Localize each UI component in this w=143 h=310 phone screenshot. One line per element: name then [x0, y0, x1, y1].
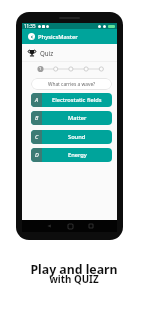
- staticText: Energy: [68, 151, 87, 159]
- staticText: C: [35, 133, 39, 141]
- staticText: A: [35, 96, 39, 104]
- staticText: Play and learn: [30, 261, 118, 278]
- button[interactable]: Recent apps: [87, 222, 95, 230]
- staticText: Sound: [68, 133, 86, 141]
- staticText: 1: [39, 66, 42, 72]
- staticText: PhysicsMaster: [38, 33, 78, 41]
- staticText: B: [35, 114, 39, 122]
- button[interactable]: What carries a wave?: [31, 78, 112, 90]
- button[interactable]: Back: [45, 222, 53, 230]
- staticText: D: [35, 151, 39, 159]
- button[interactable]: Home: [66, 222, 74, 230]
- button[interactable]: B: [31, 111, 112, 125]
- button[interactable]: Back: [28, 33, 35, 40]
- button[interactable]: Quiz: [28, 44, 117, 61]
- button[interactable]: A: [31, 93, 112, 107]
- button[interactable]: D: [31, 148, 112, 162]
- staticText: Matter: [68, 114, 87, 122]
- staticText: What carries a wave?: [48, 81, 96, 88]
- staticText: Quiz: [40, 49, 54, 57]
- staticText: with QUIZ: [49, 273, 99, 286]
- button[interactable]: C: [31, 130, 112, 144]
- staticText: Electrostatic fields: [52, 96, 102, 104]
- staticText: 11:35: [24, 23, 36, 29]
